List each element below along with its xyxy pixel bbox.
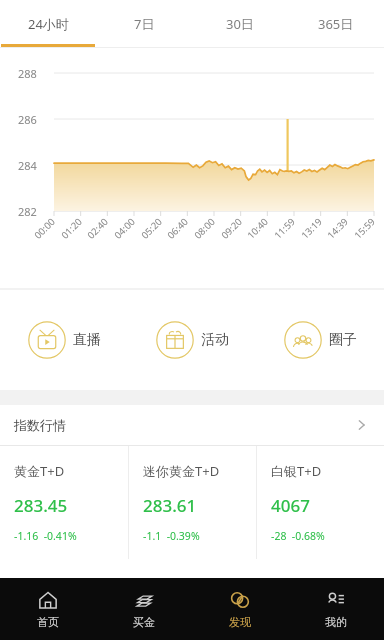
staticText: 08:00 (191, 215, 218, 242)
staticText: 15:59 (351, 215, 378, 242)
staticText: -1.16 -0.41% (14, 529, 77, 543)
staticText: 24小时 (28, 15, 69, 33)
staticText: 首页 (37, 615, 59, 629)
button[interactable]: 白银T+D (257, 446, 384, 559)
button[interactable]: 圈子 (256, 290, 384, 390)
staticText: 05:20 (138, 215, 165, 242)
staticText: 直播 (73, 331, 101, 349)
staticText: 迷你黄金T+D (143, 462, 220, 480)
button[interactable]: 直播 (0, 290, 128, 390)
button[interactable]: 365日 (288, 0, 384, 48)
staticText: 活动 (201, 331, 229, 349)
staticText: 13:19 (298, 215, 325, 242)
button[interactable]: 30日 (192, 0, 288, 48)
staticText: 283.45 (14, 494, 68, 517)
staticText: -28 -0.68% (271, 529, 325, 543)
button[interactable]: 黄金T+D (0, 446, 128, 559)
staticText: 白银T+D (271, 462, 322, 480)
button[interactable]: 24小时 (0, 0, 96, 48)
button[interactable]: 7日 (96, 0, 192, 48)
staticText: 7日 (134, 15, 155, 33)
staticText: -1.1 -0.39% (143, 529, 200, 543)
staticText: 14:39 (324, 215, 351, 242)
button[interactable]: 发现 (192, 578, 288, 640)
staticText: 买金 (133, 615, 155, 629)
button[interactable]: 买金 (96, 578, 192, 640)
button[interactable]: 我的 (288, 578, 384, 640)
staticText: 我的 (325, 615, 347, 629)
staticText: 30日 (226, 15, 254, 33)
staticText: 发现 (229, 615, 251, 629)
staticText: 282 (18, 204, 37, 219)
staticText: 286 (18, 112, 37, 127)
button[interactable]: 首页 (0, 578, 96, 640)
staticText: 01:20 (58, 215, 85, 242)
staticText: 06:40 (164, 215, 191, 242)
staticText: 284 (18, 158, 37, 173)
staticText: 00:00 (31, 215, 58, 242)
staticText: 指数行情 (14, 417, 66, 433)
staticText: 圈子 (329, 331, 357, 349)
staticText: 365日 (318, 15, 354, 33)
button[interactable]: 活动 (128, 290, 256, 390)
staticText: 4067 (271, 494, 310, 517)
staticText: 10:40 (244, 215, 271, 242)
staticText: 283.61 (143, 494, 197, 517)
staticText: 288 (18, 66, 37, 81)
button[interactable]: 迷你黄金T+D (129, 446, 256, 559)
button[interactable]: 指数行情 (0, 405, 384, 445)
staticText: 04:00 (111, 215, 138, 242)
staticText: 11:59 (271, 215, 298, 242)
staticText: 02:40 (84, 215, 111, 242)
staticText: 09:20 (218, 215, 245, 242)
staticText: 黄金T+D (14, 462, 65, 480)
